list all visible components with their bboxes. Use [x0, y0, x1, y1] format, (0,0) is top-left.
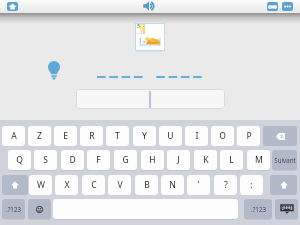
staticText: Q — [16, 154, 23, 166]
staticText: R — [89, 130, 95, 142]
button[interactable]: L — [220, 150, 243, 170]
staticText: P — [246, 130, 252, 142]
staticText: U — [167, 130, 174, 142]
button[interactable]: N — [161, 175, 184, 195]
staticText: V — [117, 179, 123, 191]
staticText: L — [229, 154, 234, 166]
staticText: Z — [37, 130, 42, 142]
button[interactable]: C — [82, 175, 105, 195]
button[interactable]: O — [211, 126, 234, 146]
staticText: Suivant — [274, 156, 296, 164]
button[interactable]: V — [108, 175, 131, 195]
staticText: X — [64, 179, 70, 191]
button[interactable]: S — [34, 150, 57, 170]
button[interactable]: Picture clue — [135, 23, 165, 51]
staticText: K — [203, 154, 209, 166]
staticText: D — [69, 154, 76, 166]
button[interactable]: Play sound — [143, 1, 156, 11]
staticText: G — [122, 154, 129, 166]
button[interactable]: ? — [214, 175, 237, 195]
button[interactable]: Home — [7, 2, 18, 11]
button[interactable]: D — [61, 150, 84, 170]
staticText: F — [96, 154, 101, 166]
button[interactable]: Q — [8, 150, 31, 170]
button[interactable]: J — [167, 150, 190, 170]
button[interactable]: More options — [282, 2, 293, 11]
staticText: .?123 — [6, 205, 21, 213]
staticText: W — [37, 179, 45, 191]
staticText: : — [250, 179, 253, 191]
button[interactable]: E — [54, 126, 77, 146]
button[interactable]: A — [2, 126, 25, 146]
button[interactable]: Z — [28, 126, 51, 146]
button[interactable]: I — [185, 126, 208, 146]
button[interactable]: Answer field — [76, 89, 225, 109]
button[interactable]: : — [240, 175, 263, 195]
staticText: A — [11, 130, 17, 142]
staticText: H — [149, 154, 156, 166]
staticText: N — [169, 179, 176, 191]
staticText: T — [115, 130, 120, 142]
button[interactable]: .?123 — [2, 199, 25, 219]
staticText: O — [219, 130, 226, 142]
staticText: I — [195, 130, 199, 142]
button[interactable]: W — [29, 175, 52, 195]
button[interactable]: T — [106, 126, 129, 146]
button[interactable]: U — [159, 126, 182, 146]
staticText: J — [177, 154, 180, 166]
button[interactable]: Suivant — [272, 150, 297, 170]
staticText: E — [63, 130, 68, 142]
button[interactable]: Games — [267, 2, 278, 11]
staticText: C — [91, 179, 97, 191]
staticText: M — [255, 154, 263, 166]
button[interactable]: G — [114, 150, 137, 170]
staticText: B — [144, 179, 150, 191]
button[interactable]: Backspace — [263, 126, 297, 146]
button[interactable]: Hide keyboard — [275, 199, 298, 219]
button[interactable]: Y — [133, 126, 156, 146]
staticText: S — [43, 154, 48, 166]
button[interactable]: K — [194, 150, 217, 170]
button[interactable]: B — [135, 175, 158, 195]
staticText: ' — [197, 179, 200, 191]
staticText: ? — [224, 179, 228, 191]
button[interactable]: .?123 — [244, 199, 272, 219]
button[interactable]: R — [80, 126, 103, 146]
staticText: .?123 — [251, 205, 266, 213]
button[interactable]: ' — [187, 175, 210, 195]
button[interactable]: Shift — [2, 175, 28, 195]
button[interactable]: F — [87, 150, 110, 170]
button[interactable]: P — [237, 126, 260, 146]
button[interactable]: Emoji — [28, 199, 51, 219]
button[interactable]: Hint — [48, 61, 60, 80]
button[interactable]: H — [141, 150, 164, 170]
button[interactable]: M — [247, 150, 270, 170]
staticText: Y — [142, 130, 147, 142]
button[interactable]: X — [55, 175, 78, 195]
button[interactable]: Shift — [270, 175, 297, 195]
